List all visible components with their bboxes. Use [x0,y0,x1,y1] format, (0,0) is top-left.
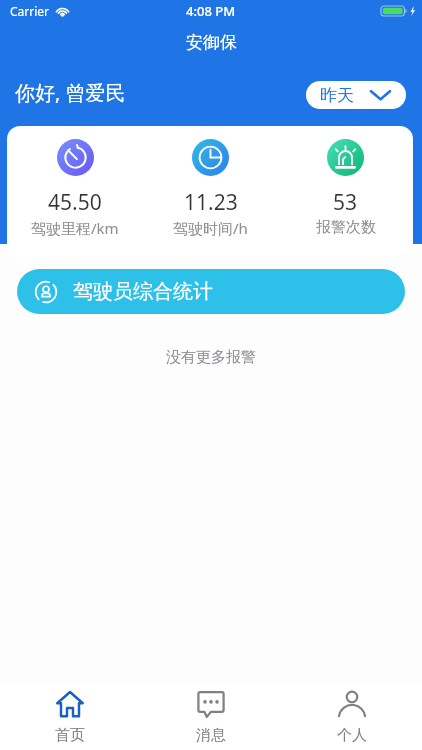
staticText: 昨天 [320,85,354,106]
button[interactable]: 首页 [0,684,140,750]
staticText: 驾驶时间/h [173,218,248,238]
staticText: 消息 [196,726,226,745]
staticText: 11.23 [184,188,238,217]
staticText: 你好, 曾爱民 [15,79,126,106]
staticText: 53 [333,188,358,217]
staticText: 个人 [337,726,367,745]
staticText: 没有更多报警 [0,348,422,367]
staticText: 首页 [55,726,85,745]
staticText: 驾驶里程/km [31,218,119,238]
staticText: 45.50 [48,188,102,217]
staticText: Carrier [10,3,50,19]
staticText: 安御保 [186,32,237,53]
staticText: 4:08 PM [186,2,236,20]
staticText: 驾驶员综合统计 [73,279,213,304]
button[interactable]: 个人 [281,684,422,750]
button[interactable]: 驾驶员综合统计 [17,269,405,314]
button[interactable]: 昨天 [306,81,406,109]
button[interactable]: 消息 [140,684,281,750]
staticText: 报警次数 [316,218,376,237]
